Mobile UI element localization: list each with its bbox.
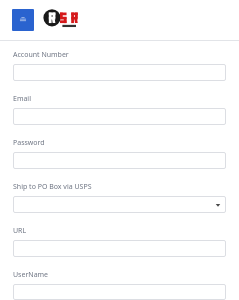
staticText: Ship to PO Box via USPS <box>13 182 92 192</box>
button[interactable]: Ship to PO Box via USPS selector <box>13 196 226 213</box>
staticText: URL <box>13 226 27 236</box>
button[interactable] <box>13 108 226 125</box>
button[interactable] <box>13 152 226 169</box>
staticText: Password <box>13 138 45 148</box>
button[interactable] <box>13 64 226 81</box>
staticText: Account Number <box>13 50 69 60</box>
button[interactable]: Menu <box>12 9 34 31</box>
staticText: UserName <box>13 270 49 280</box>
button[interactable] <box>13 240 226 257</box>
staticText: Email <box>13 94 31 104</box>
button[interactable]: RSR Group home <box>44 9 84 31</box>
button[interactable] <box>13 284 226 300</box>
